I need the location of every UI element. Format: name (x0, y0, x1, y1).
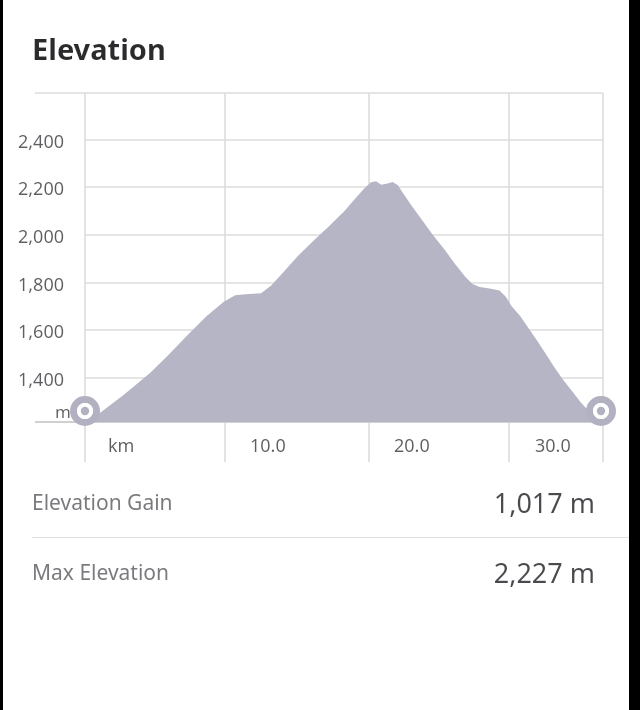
staticText: 2,000 (17, 224, 64, 249)
button[interactable]: Elevation Gain (3, 468, 629, 537)
staticText: 2,200 (17, 176, 64, 201)
staticText: Elevation Gain (32, 488, 173, 517)
button[interactable]: Max Elevation (3, 538, 629, 607)
staticText: 1,800 (17, 272, 64, 297)
staticText: km (108, 433, 135, 458)
staticText: Max Elevation (32, 558, 170, 587)
staticText: 1,600 (17, 319, 64, 344)
staticText: m (55, 400, 71, 423)
staticText: 30.0 (535, 433, 571, 458)
staticText: 1,400 (17, 367, 64, 392)
staticText: 1,017 m (493, 484, 595, 521)
staticText: 20.0 (394, 433, 430, 458)
staticText: Elevation (32, 29, 166, 68)
staticText: 2,227 m (493, 554, 595, 591)
staticText: 2,400 (17, 129, 64, 154)
staticText: 10.0 (250, 433, 286, 458)
